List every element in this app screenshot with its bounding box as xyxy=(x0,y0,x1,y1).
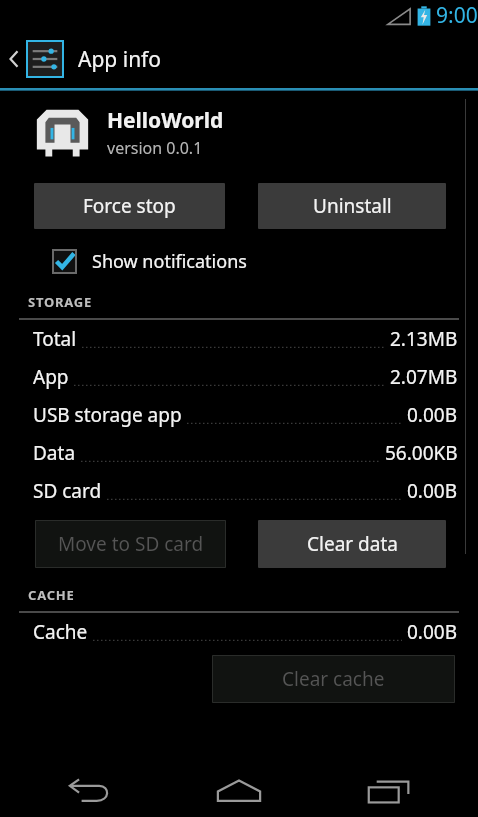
button[interactable]: Clear data xyxy=(258,520,446,568)
button[interactable]: Back xyxy=(30,765,150,817)
staticText: 2.13MB xyxy=(390,326,458,352)
staticText: Clear cache xyxy=(282,666,385,692)
staticText: App xyxy=(33,364,69,390)
staticText: SD card xyxy=(33,478,102,504)
button[interactable]: App info xyxy=(0,30,478,88)
staticText: Data xyxy=(33,440,76,466)
button[interactable]: Clear cache xyxy=(212,655,455,703)
button[interactable]: Total xyxy=(0,320,478,358)
button[interactable]: Data xyxy=(0,434,478,472)
staticText: Show notifications xyxy=(92,249,247,274)
button[interactable]: Home xyxy=(179,765,299,817)
staticText: 0.00B xyxy=(407,619,458,645)
button[interactable]: Force stop xyxy=(34,183,225,229)
staticText: Total xyxy=(33,326,77,352)
button[interactable]: Show notifications xyxy=(52,246,247,276)
button[interactable]: Cache xyxy=(0,613,478,651)
staticText: 0.00B xyxy=(407,478,458,504)
staticText: 9:00 xyxy=(436,1,478,30)
staticText: 56.00KB xyxy=(385,440,458,466)
staticText: 2.07MB xyxy=(390,364,458,390)
button[interactable]: Uninstall xyxy=(258,183,446,229)
button[interactable]: SD card xyxy=(0,472,478,510)
staticText: Uninstall xyxy=(313,193,392,219)
staticText: Force stop xyxy=(83,193,176,219)
staticText: version 0.0.1 xyxy=(107,137,203,159)
button[interactable]: Recent apps xyxy=(329,765,449,817)
button[interactable]: Move to SD card xyxy=(35,520,226,568)
button[interactable]: USB storage app xyxy=(0,396,478,434)
staticText: App info xyxy=(78,45,162,74)
staticText: Move to SD card xyxy=(58,531,204,557)
staticText: STORAGE xyxy=(28,293,93,311)
button[interactable]: App xyxy=(0,358,478,396)
staticText: Cache xyxy=(33,619,88,645)
staticText: USB storage app xyxy=(33,402,182,428)
staticText: Clear data xyxy=(307,531,398,557)
staticText: CACHE xyxy=(28,586,75,604)
staticText: HelloWorld xyxy=(107,106,224,135)
staticText: 0.00B xyxy=(407,402,458,428)
